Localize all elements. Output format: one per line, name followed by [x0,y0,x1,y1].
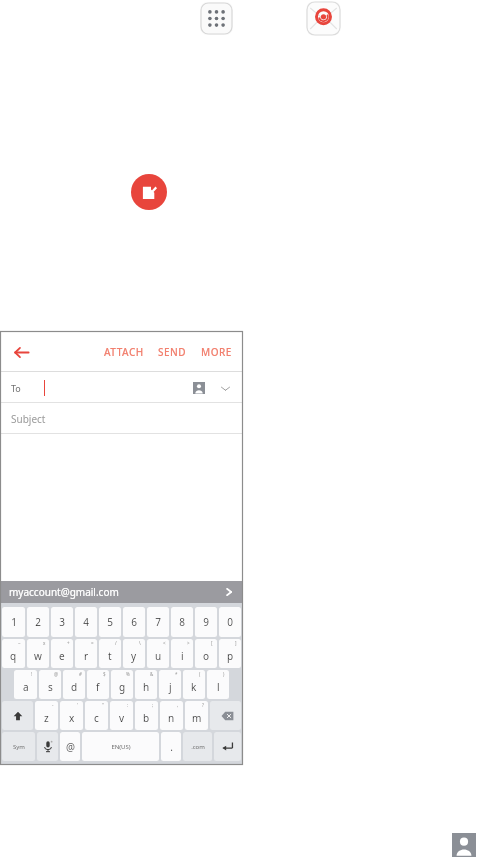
button[interactable]: \ [123,639,145,668]
staticText: j [169,680,172,694]
staticText: 0 [227,615,233,629]
staticText: To [11,382,21,394]
button[interactable]: $ [87,670,109,699]
staticText: = [91,640,94,646]
staticText: x [43,640,46,646]
staticText: ) [223,671,225,677]
button[interactable]: . [161,732,181,761]
button[interactable]: 1 [2,607,25,637]
button[interactable]: ATTACH [97,339,151,365]
button[interactable]: 0 [219,607,241,637]
button[interactable]: MORE [194,339,239,365]
staticText: m [192,711,202,725]
staticText: g [119,680,126,694]
button[interactable]: ? [185,701,208,730]
staticText: k [191,680,197,694]
staticText: - [52,702,54,708]
button[interactable]: ( [183,670,205,699]
staticText: p [227,649,234,663]
staticText: * [175,671,178,677]
button[interactable]: @ [39,670,61,699]
button[interactable]: # [63,670,85,699]
staticText: ' [77,702,79,708]
staticText: 3 [59,615,65,629]
staticText: 2 [35,615,41,629]
button[interactable]: 4 [75,607,97,637]
button[interactable]: Enter [214,732,241,761]
staticText: 6 [131,615,137,629]
button[interactable]: = [75,639,97,668]
button[interactable]: > [171,639,193,668]
staticText: # [79,671,82,677]
button[interactable]: ; [135,701,158,730]
staticText: ~ [18,640,21,646]
button[interactable]: * [159,670,181,699]
staticText: \ [139,640,141,646]
button[interactable]: 6 [123,607,145,637]
button[interactable]: ' [60,701,83,730]
button[interactable]: Delete [210,701,241,730]
staticText: MORE [201,345,232,359]
staticText: ; [152,702,154,708]
button[interactable]: < [147,639,169,668]
button[interactable]: [ [195,639,217,668]
staticText: " [102,702,104,708]
button[interactable]: Expand recipients [217,380,233,396]
staticText: Subject [11,412,46,426]
staticText: h [143,680,150,694]
button[interactable]: 2 [27,607,49,637]
button[interactable]: x [27,639,49,668]
staticText: ] [235,640,237,646]
button[interactable]: EN(US) [82,732,159,761]
staticText: d [71,680,78,694]
button[interactable]: - [35,701,58,730]
staticText: 1 [11,615,17,629]
button[interactable]: SEND [151,339,194,365]
button[interactable]: / [99,639,121,668]
staticText: Sym [13,743,25,751]
button[interactable]: ] [219,639,241,668]
button[interactable]: .com [183,732,212,761]
staticText: a [23,680,29,694]
staticText: % [126,671,130,677]
staticText: i [181,649,184,663]
staticText: $ [103,671,106,677]
button[interactable]: 7 [147,607,169,637]
staticText: r [84,649,89,663]
staticText: EN(US) [111,743,131,751]
button[interactable]: : [110,701,133,730]
button[interactable]: 9 [195,607,217,637]
button[interactable]: Compose [131,174,167,210]
button[interactable]: ~ [2,639,25,668]
button[interactable]: ) [207,670,229,699]
button[interactable]: Voice input [37,732,58,761]
staticText: ? [202,702,204,708]
staticText: l [217,680,220,694]
button[interactable]: @ [60,732,80,761]
staticText: w [34,649,42,663]
button[interactable]: " [85,701,108,730]
button[interactable]: & [135,670,157,699]
button[interactable]: Sym [2,732,35,761]
button[interactable]: 5 [99,607,121,637]
button[interactable]: To [0,372,243,403]
button[interactable]: % [111,670,133,699]
button[interactable]: Email [306,1,341,36]
button[interactable]: Shift [2,701,33,730]
staticText: < [163,640,166,646]
button[interactable]: 3 [51,607,73,637]
button[interactable]: + [51,639,73,668]
button[interactable]: myaccount@gmail.com [0,581,243,603]
button[interactable]: 8 [171,607,193,637]
button[interactable]: Subject [0,403,243,434]
button[interactable]: Pick contact [193,382,205,394]
staticText: , [177,702,179,708]
button[interactable]: Apps [200,2,233,35]
staticText: v [119,711,125,725]
staticText: n [168,711,175,725]
button[interactable]: Back [7,338,35,366]
staticText: x [69,711,75,725]
button[interactable]: ! [14,670,37,699]
button[interactable]: , [160,701,183,730]
staticText: . [170,740,173,754]
